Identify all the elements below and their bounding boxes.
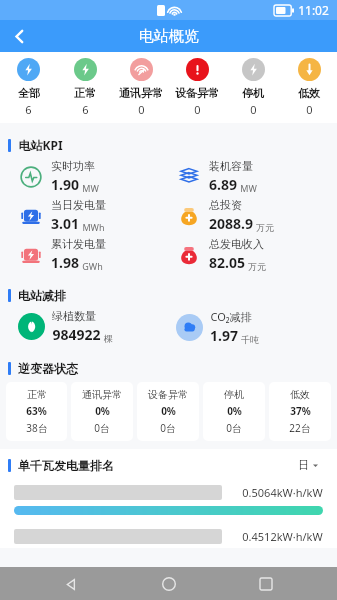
staticText: 停机 [224, 388, 244, 401]
staticText: 绿植数量 [52, 309, 96, 323]
staticText: 万元 [256, 222, 274, 233]
staticText: 实时功率 [51, 159, 95, 173]
staticText: 低效 [298, 86, 320, 100]
staticText: 6 [25, 102, 32, 117]
staticText: 2088.9 [209, 214, 253, 233]
staticText: 11:02 [298, 2, 329, 18]
staticText: 1.97 [210, 326, 238, 345]
staticText: 0 [306, 102, 313, 117]
staticText: 3.01 [51, 214, 79, 233]
staticText: MW [240, 182, 257, 194]
staticText: 0 [250, 102, 257, 117]
staticText: 装机容量 [209, 159, 253, 173]
staticText: 984922 [52, 325, 101, 344]
staticText: CO₂减排 [210, 309, 252, 324]
staticText: 通讯异常 [119, 86, 163, 100]
button[interactable]: 总发电收入 [176, 237, 337, 272]
staticText: 0% [95, 404, 110, 418]
staticText: 万元 [248, 261, 266, 272]
button[interactable]: 停机 [225, 58, 281, 117]
staticText: 22台 [289, 421, 311, 435]
button[interactable]: 正常 [57, 58, 113, 117]
staticText: 37% [290, 404, 311, 418]
button[interactable]: 正常 [6, 382, 67, 441]
button[interactable]: 低效 [269, 382, 331, 441]
staticText: 1.98 [51, 253, 79, 272]
button[interactable]: 设备异常 [169, 58, 225, 117]
staticText: 0 [138, 102, 145, 117]
staticText: 0% [161, 404, 176, 418]
staticText: 0台 [94, 421, 110, 435]
staticText: 总投资 [209, 198, 242, 212]
button[interactable]: 低效 [281, 58, 337, 117]
staticText: 0台 [160, 421, 176, 435]
button[interactable]: Home [154, 569, 184, 599]
staticText: 38台 [26, 421, 48, 435]
button[interactable]: 累计发电量 [18, 237, 168, 272]
button[interactable]: 日 [289, 455, 327, 475]
button[interactable]: Back [56, 569, 86, 599]
staticText: 0 [194, 102, 201, 117]
staticText: 0.5064kW·h/kW [242, 485, 323, 500]
staticText: 单千瓦发电量排名 [18, 458, 114, 473]
staticText: 逆变器状态 [18, 361, 78, 376]
button[interactable]: 全部 [0, 58, 57, 117]
staticText: 停机 [242, 86, 264, 100]
staticText: MW [82, 182, 99, 194]
button[interactable]: 当日发电量 [18, 198, 168, 233]
button[interactable]: 通讯异常 [71, 382, 133, 441]
staticText: 累计发电量 [51, 237, 106, 251]
staticText: 全部 [18, 86, 40, 100]
staticText: 日 [298, 458, 309, 472]
staticText: 电站减排 [18, 288, 66, 303]
button[interactable]: 停机 [203, 382, 265, 441]
staticText: 6 [82, 102, 89, 117]
staticText: 总发电收入 [209, 237, 264, 251]
staticText: 电站KPI [18, 137, 63, 153]
button[interactable]: 设备异常 [137, 382, 199, 441]
button[interactable]: 通讯异常 [113, 58, 169, 117]
staticText: MWh [82, 221, 105, 233]
button[interactable]: CO₂减排 [176, 309, 337, 345]
button[interactable]: 实时功率 [18, 159, 168, 194]
button[interactable]: Recents [251, 569, 281, 599]
staticText: 棵 [104, 333, 113, 344]
staticText: 千吨 [241, 334, 259, 345]
staticText: 设备异常 [148, 388, 188, 401]
staticText: GWh [82, 260, 103, 272]
button[interactable]: 装机容量 [176, 159, 337, 194]
staticText: 正常 [27, 388, 47, 401]
staticText: 通讯异常 [82, 388, 122, 401]
staticText: 电站概览 [139, 27, 199, 46]
staticText: 82.05 [209, 253, 245, 272]
staticText: 63% [26, 404, 47, 418]
staticText: 低效 [290, 388, 310, 401]
staticText: 6.89 [209, 175, 237, 194]
staticText: 0% [227, 404, 242, 418]
button[interactable]: 总投资 [176, 198, 337, 233]
staticText: 当日发电量 [51, 198, 106, 212]
staticText: 0台 [226, 421, 242, 435]
staticText: 1.90 [51, 175, 79, 194]
button[interactable]: Back [0, 20, 38, 52]
button[interactable]: 绿植数量 [18, 309, 168, 344]
staticText: 设备异常 [175, 86, 219, 100]
staticText: 0.4512kW·h/kW [242, 529, 323, 544]
staticText: 正常 [74, 86, 96, 100]
